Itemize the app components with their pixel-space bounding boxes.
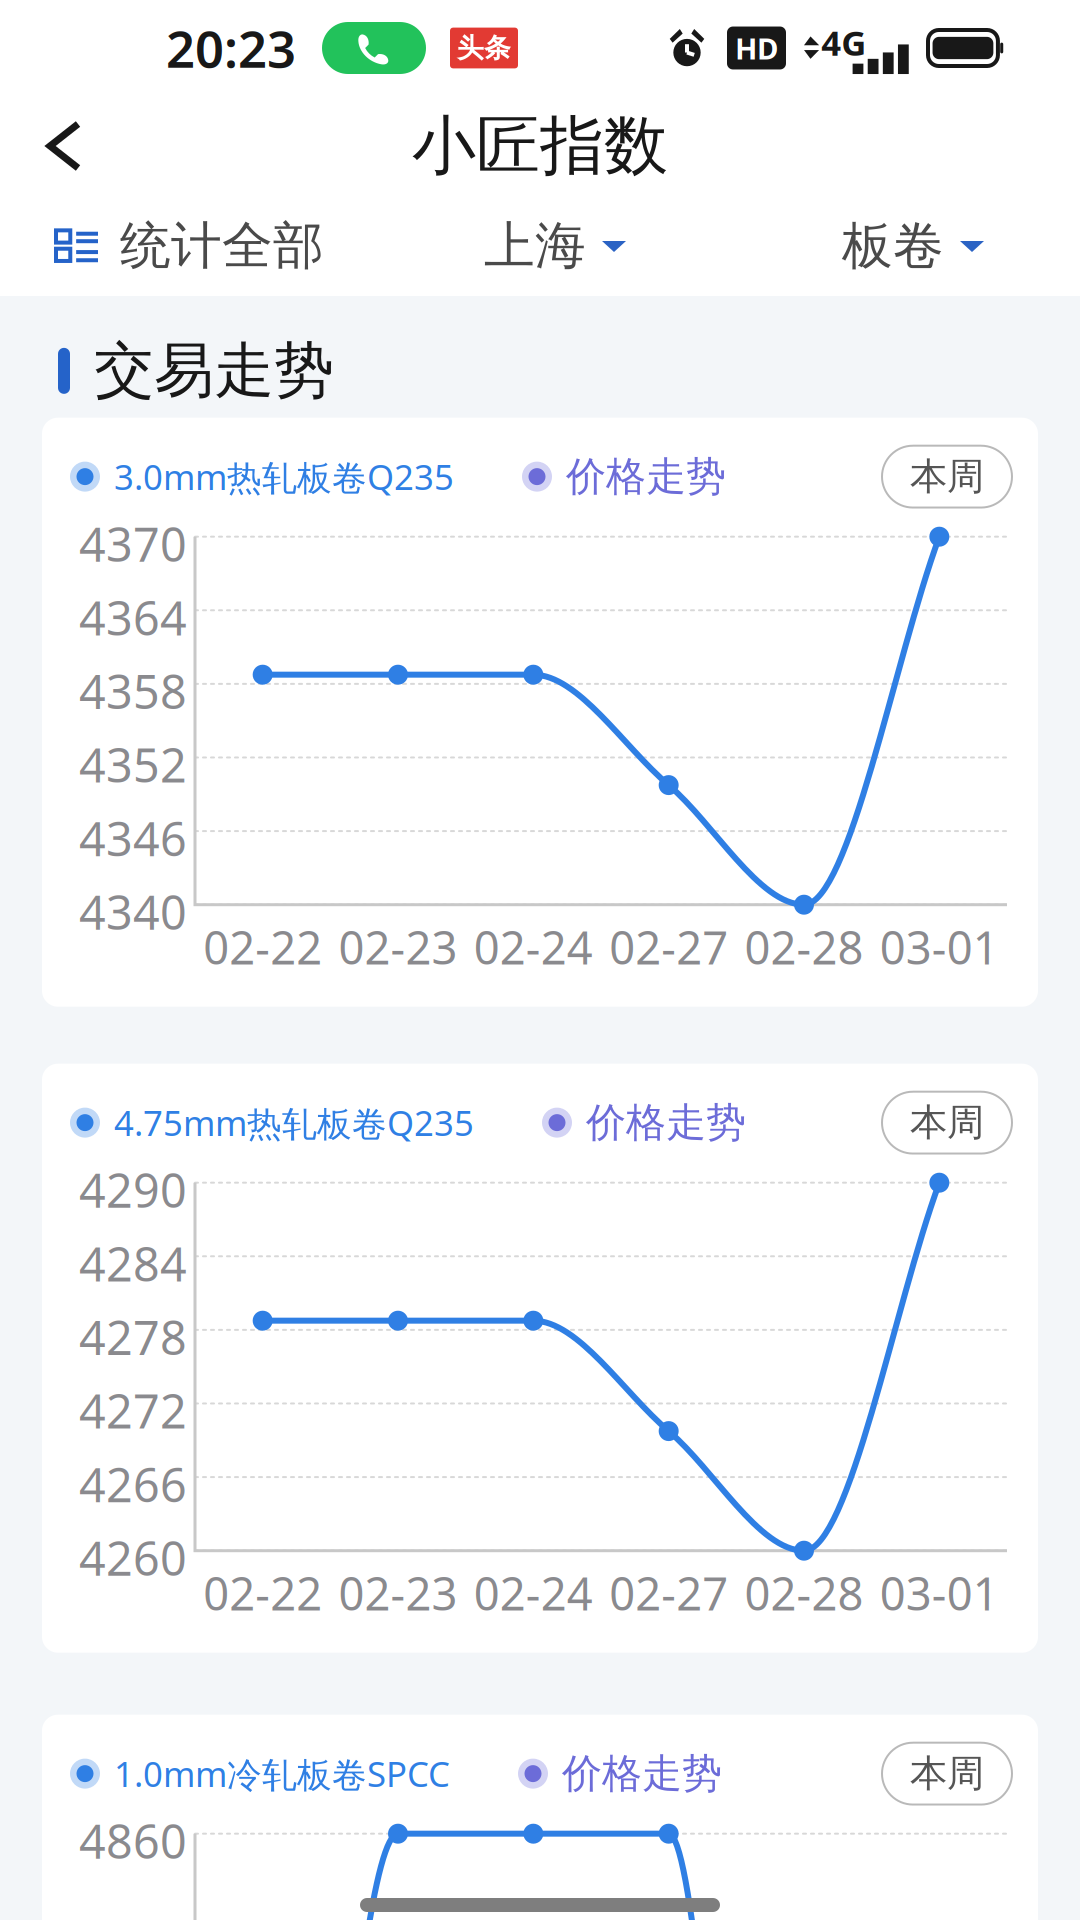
staticText: 4284 <box>79 1232 187 1294</box>
staticText: 4G <box>821 19 866 65</box>
staticText: 板卷 <box>842 215 944 277</box>
staticText: 4370 <box>79 513 187 575</box>
staticText: 02-28 <box>744 1563 863 1623</box>
staticText: 4364 <box>79 586 187 648</box>
staticText: 4278 <box>79 1306 187 1368</box>
button[interactable]: 统计全部 <box>0 199 348 293</box>
staticText: 价格走势 <box>586 1098 746 1147</box>
staticText: 02-24 <box>474 917 593 977</box>
staticText: 统计全部 <box>120 215 324 277</box>
staticText: 20:23 <box>166 14 296 82</box>
staticText: HD <box>735 28 778 67</box>
button[interactable]: 本周 <box>882 1743 1012 1805</box>
button[interactable]: 板卷 <box>818 199 1080 293</box>
button[interactable]: Back <box>0 100 110 192</box>
staticText: 交易走势 <box>94 334 334 408</box>
staticText: 上海 <box>484 215 586 277</box>
staticText: 02-24 <box>474 1563 593 1623</box>
staticText: 03-01 <box>880 917 999 977</box>
staticText: 02-28 <box>744 917 863 977</box>
staticText: 02-23 <box>338 917 457 977</box>
staticText: 4290 <box>79 1159 187 1221</box>
staticText: 本周 <box>910 1751 984 1797</box>
staticText: 02-22 <box>203 1563 322 1623</box>
button[interactable]: 本周 <box>882 1092 1012 1154</box>
staticText: 4.75mm热轧板卷Q235 <box>114 1099 474 1146</box>
staticText: 4860 <box>79 1810 187 1872</box>
staticText: 1.0mm冷轧板卷SPCC <box>114 1750 450 1797</box>
staticText: 4346 <box>79 807 187 869</box>
staticText: 本周 <box>910 454 984 500</box>
button[interactable]: 上海 <box>460 199 650 293</box>
staticText: 02-27 <box>609 917 728 977</box>
staticText: 02-23 <box>338 1563 457 1623</box>
staticText: 4272 <box>79 1379 187 1441</box>
staticText: 价格走势 <box>562 1749 722 1798</box>
staticText: 4352 <box>79 733 187 795</box>
staticText: 02-27 <box>609 1563 728 1623</box>
button[interactable]: 本周 <box>882 446 1012 508</box>
staticText: 03-01 <box>880 1563 999 1623</box>
staticText: 4340 <box>79 881 187 943</box>
staticText: 4358 <box>79 660 187 722</box>
staticText: 3.0mm热轧板卷Q235 <box>114 453 454 500</box>
staticText: 4266 <box>79 1453 187 1515</box>
staticText: 小匠指数 <box>412 107 668 185</box>
staticText: 价格走势 <box>566 452 726 501</box>
staticText: 4260 <box>79 1527 187 1589</box>
staticText: 02-22 <box>203 917 322 977</box>
staticText: 本周 <box>910 1100 984 1146</box>
staticText: 头条 <box>457 32 511 64</box>
